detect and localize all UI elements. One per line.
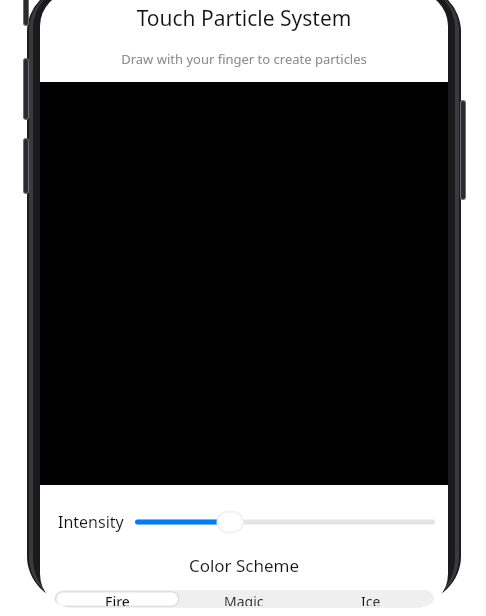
staticText: Magic — [224, 592, 264, 606]
button[interactable]: Magic — [182, 592, 305, 606]
button[interactable]: Ice — [309, 592, 432, 606]
staticText: Fire — [105, 592, 130, 606]
button[interactable]: Fire — [56, 592, 178, 606]
staticText: Draw with your finger to create particle… — [40, 50, 448, 68]
staticText: Intensity — [58, 511, 124, 533]
button[interactable]: Intensity slider — [135, 507, 435, 537]
staticText: Touch Particle System — [40, 4, 448, 33]
staticText: Ice — [361, 592, 381, 606]
staticText: Color Scheme — [40, 554, 448, 577]
